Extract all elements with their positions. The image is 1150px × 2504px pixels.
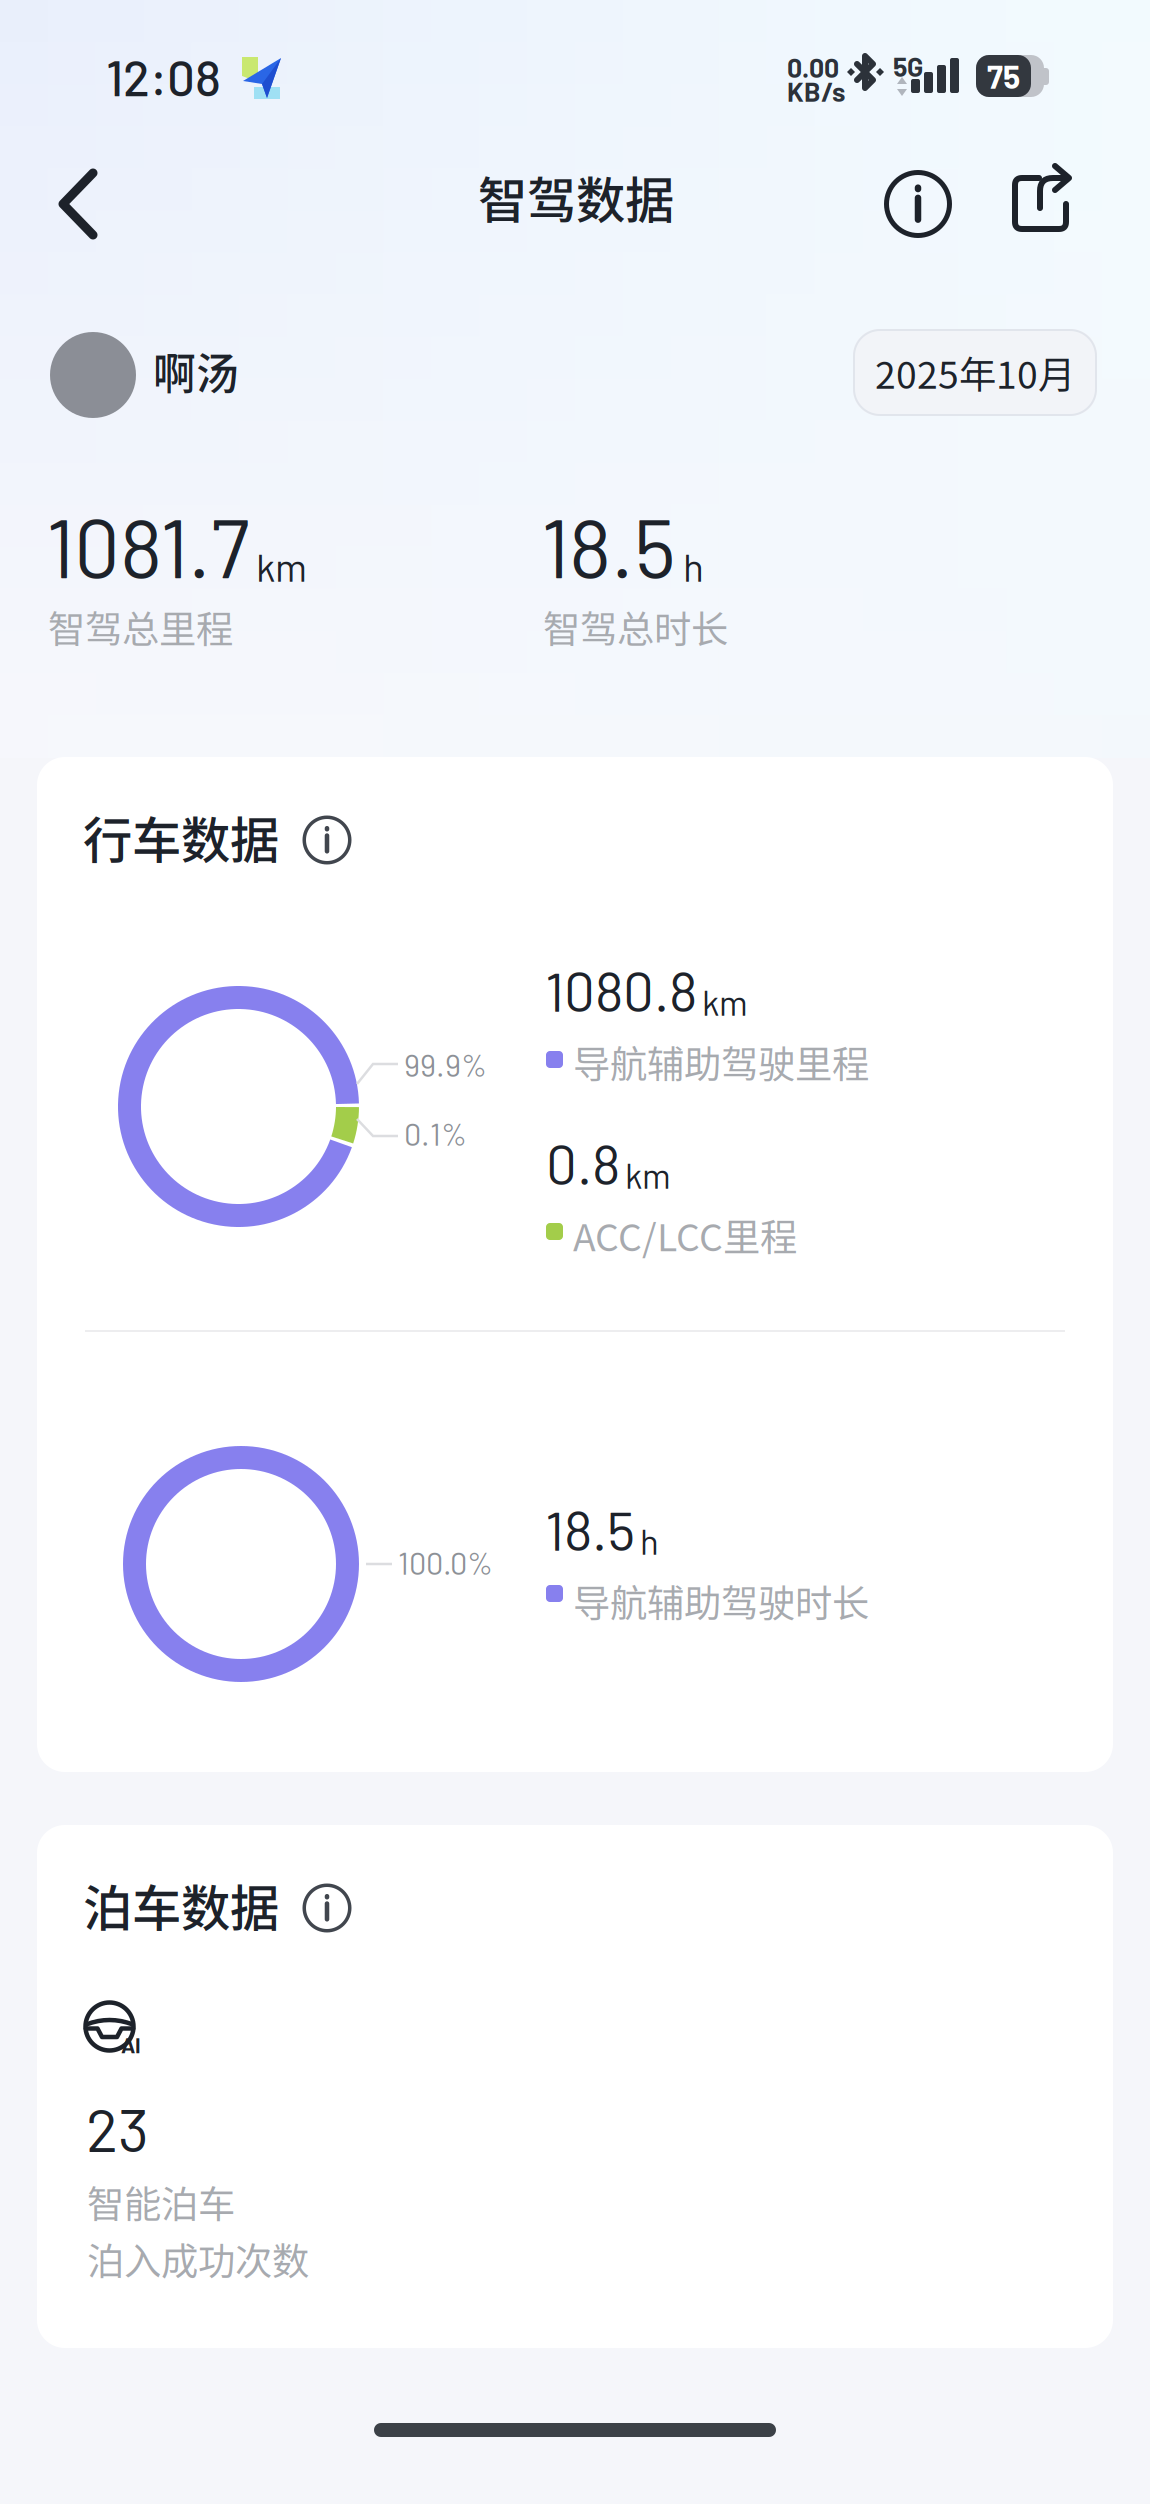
staticText: ACC/LCC里程 (573, 1208, 797, 1262)
staticText: km (625, 1154, 671, 1196)
staticText: 12:08 (106, 47, 221, 106)
staticText: AI (121, 2032, 141, 2058)
staticText: 智驾总时长 (543, 600, 728, 654)
staticText: 智能泊车 (87, 2175, 235, 2229)
button[interactable]: Information (864, 160, 972, 248)
staticText: 导航辅助驾驶时长 (573, 1574, 869, 1628)
button[interactable]: Back (47, 160, 155, 248)
staticText: 0.00 (787, 51, 839, 83)
staticText: 1081.7 (46, 497, 249, 595)
staticText: 23 (86, 2092, 149, 2164)
button[interactable]: 2025年10月 (853, 329, 1097, 416)
staticText: 智驾总里程 (48, 600, 233, 654)
staticText: 18.5 (545, 1496, 635, 1562)
staticText: 行车数据 (83, 801, 279, 872)
staticText: 泊入成功次数 (87, 2232, 309, 2286)
staticText: 2025年10月 (875, 345, 1075, 400)
button[interactable]: About parking data (292, 1873, 362, 1943)
staticText: 5G (893, 50, 923, 82)
staticText: 75 (987, 57, 1020, 95)
staticText: km (256, 543, 307, 590)
staticText: 泊车数据 (83, 1869, 279, 1940)
button[interactable]: Share (987, 160, 1095, 248)
staticText: 智驾数据 (478, 161, 674, 232)
staticText: 99.9% (404, 1046, 487, 1083)
staticText: h (640, 1520, 659, 1562)
staticText: KB/s (787, 75, 845, 107)
button[interactable]: About driving data (292, 805, 362, 875)
staticText: km (702, 981, 748, 1023)
staticText: h (683, 543, 704, 590)
staticText: 1080.8 (545, 957, 697, 1023)
staticText: 18.5 (541, 497, 676, 595)
staticText: 导航辅助驾驶里程 (573, 1035, 869, 1089)
staticText: 0.8 (546, 1130, 620, 1196)
staticText: 100.0% (398, 1544, 493, 1581)
staticText: 0.1% (404, 1115, 467, 1152)
staticText: 啊汤 (153, 340, 239, 402)
